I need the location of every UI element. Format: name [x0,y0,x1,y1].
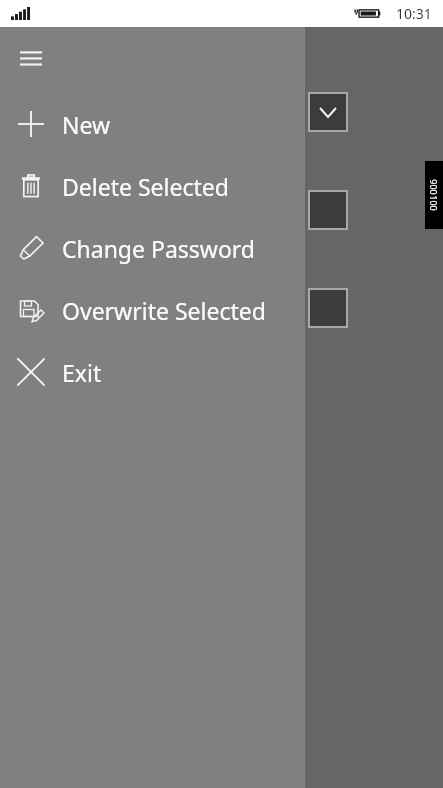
staticText: Overwrite Selected [62,295,266,326]
staticText: Delete Selected [62,171,229,202]
button[interactable]: Delete Selected [0,155,305,217]
button[interactable]: Change Password [0,217,305,279]
staticText: 10:31 [396,4,432,23]
button[interactable]: Expand [310,94,346,130]
staticText: Change Password [62,233,255,264]
staticText: 900 [428,179,440,195]
button[interactable]: Overwrite Selected [0,279,305,341]
staticText: Exit [62,357,102,388]
button[interactable]: New [0,93,305,155]
button[interactable]: Exit [0,341,305,403]
staticText: 100 [428,195,440,211]
button[interactable]: Menu [0,27,62,89]
staticText: New [62,109,111,140]
